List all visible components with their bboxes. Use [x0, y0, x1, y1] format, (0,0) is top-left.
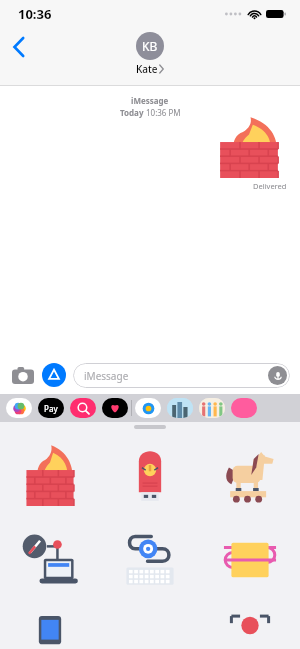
button[interactable]: App Store — [42, 363, 66, 387]
button[interactable]: App — [6, 398, 32, 418]
button[interactable]: Sticker — [0, 432, 100, 517]
button[interactable]: App — [199, 398, 225, 418]
staticText: Kate — [136, 62, 158, 76]
staticText: 10:36 PM — [146, 107, 181, 118]
staticText: iMessage — [131, 95, 169, 106]
button[interactable]: Camera — [10, 362, 36, 388]
button[interactable]: App — [135, 398, 161, 418]
staticText: Delivered — [253, 181, 287, 191]
button[interactable]: App — [102, 398, 128, 418]
button[interactable]: App — [167, 398, 193, 418]
button[interactable]: App — [231, 398, 257, 418]
button[interactable]: Sticker — [200, 517, 300, 602]
staticText: iMessage — [84, 369, 129, 383]
button[interactable]: App — [70, 398, 96, 418]
button[interactable]: App — [38, 398, 64, 418]
button[interactable]: Sticker — [0, 517, 100, 602]
button[interactable]: KB — [136, 32, 164, 76]
staticText: Pay — [44, 403, 58, 414]
staticText: KB — [142, 38, 158, 54]
button[interactable]: iMessage — [73, 363, 290, 388]
button[interactable]: Back — [4, 32, 34, 62]
button[interactable]: Sticker — [200, 432, 300, 517]
button[interactable]: Dictate — [268, 366, 287, 385]
staticText: Today — [120, 107, 146, 118]
button[interactable]: Sticker — [200, 602, 300, 649]
button[interactable]: Sticker — [0, 602, 100, 649]
staticText: 10:36 — [18, 5, 52, 23]
button[interactable]: Sticker — [100, 517, 200, 602]
button[interactable]: Sticker — [100, 432, 200, 517]
